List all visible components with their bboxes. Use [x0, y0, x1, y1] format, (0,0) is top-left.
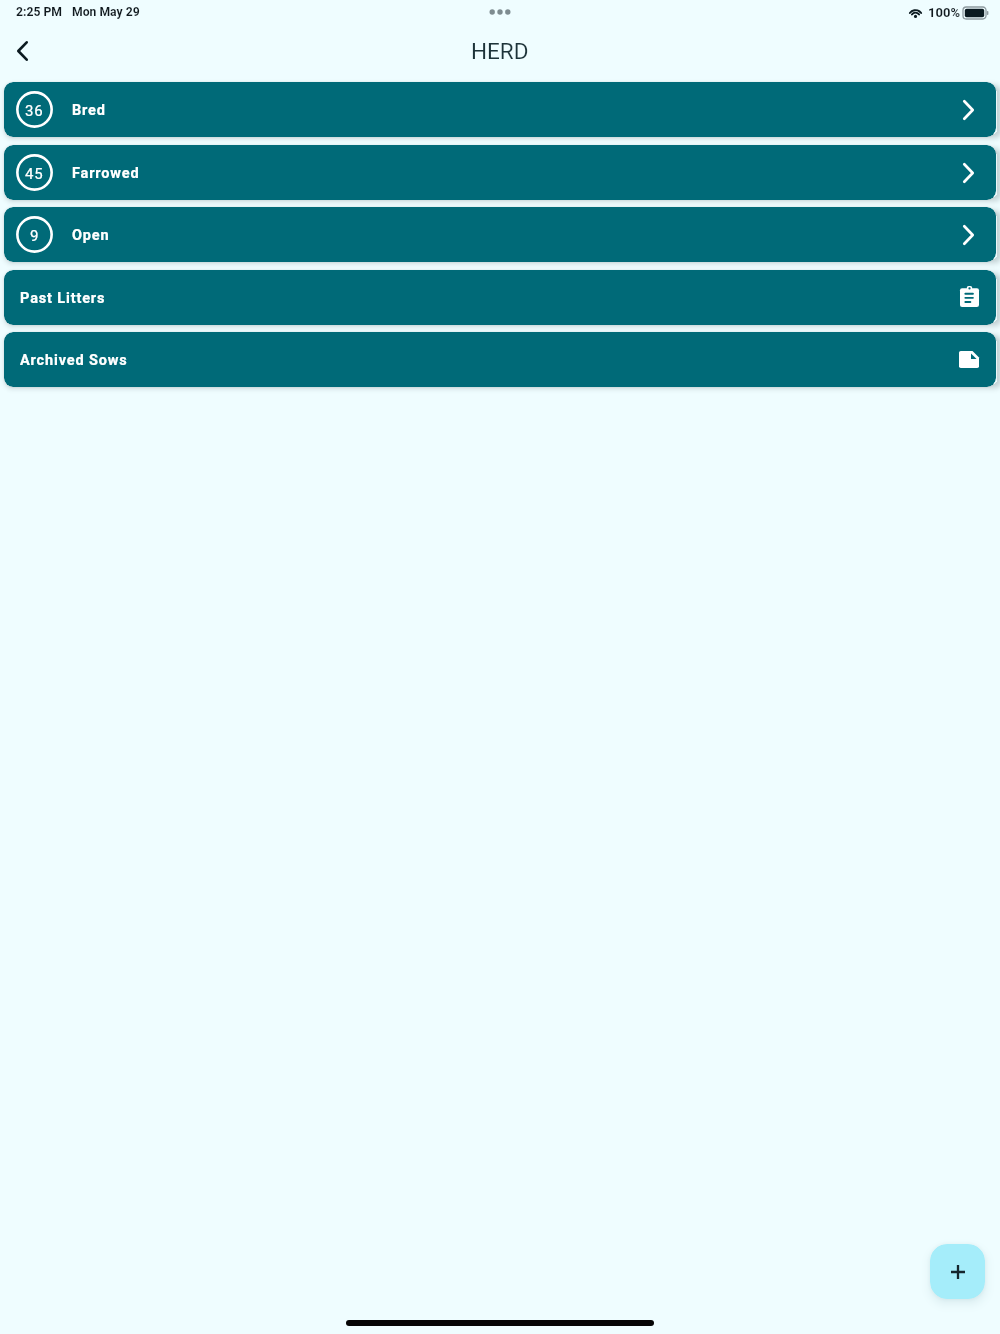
staticText: 45	[25, 165, 44, 183]
button[interactable]: 45	[4, 145, 996, 200]
button[interactable]: Back	[6, 35, 38, 67]
button[interactable]: Past Litters	[4, 270, 996, 325]
staticText: Past Litters	[20, 290, 106, 307]
staticText: 9	[30, 227, 40, 245]
staticText: Archived Sows	[20, 352, 128, 369]
staticText: HERD	[471, 38, 529, 64]
staticText: 100%	[928, 5, 960, 20]
staticText: 36	[25, 102, 44, 120]
button[interactable]: 9	[4, 207, 996, 262]
button[interactable]: Add	[930, 1244, 985, 1299]
staticText: 2:25 PM	[16, 5, 62, 19]
button[interactable]: Archived Sows	[4, 332, 996, 387]
staticText: Open	[72, 227, 110, 244]
staticText: Bred	[72, 102, 106, 119]
staticText: Mon May 29	[72, 5, 140, 19]
button[interactable]: 36	[4, 82, 996, 137]
staticText: Farrowed	[72, 165, 140, 182]
